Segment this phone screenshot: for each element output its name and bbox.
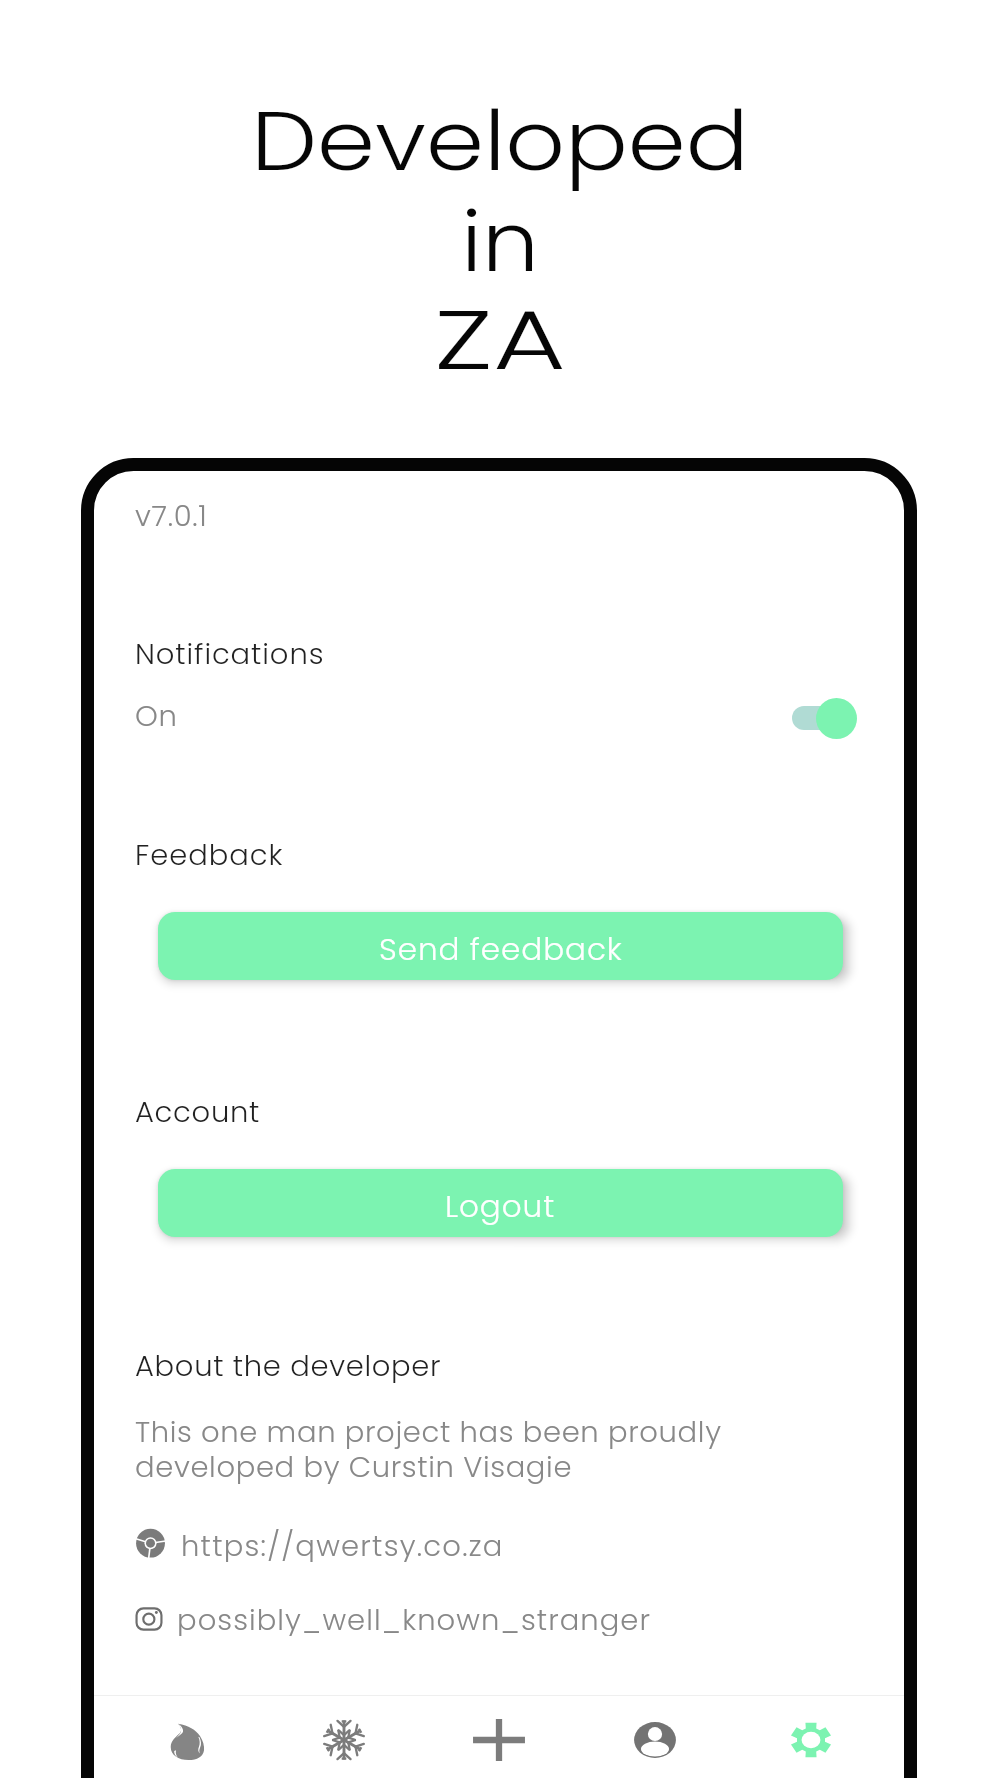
button[interactable]: Snowflake xyxy=(266,1696,421,1778)
staticText: https://qwertsy.co.za xyxy=(181,1526,504,1562)
button[interactable]: Settings xyxy=(733,1696,889,1778)
staticText: This one man project has been proudly de… xyxy=(135,1412,722,1487)
button[interactable]: Logout xyxy=(158,1169,843,1237)
staticText: ZA xyxy=(434,282,566,398)
staticText: possibly_well_known_stranger xyxy=(177,1600,651,1636)
staticText: On xyxy=(135,696,178,737)
button[interactable]: Add xyxy=(421,1696,577,1778)
button[interactable]: https://qwertsy.co.za xyxy=(135,1526,555,1562)
button[interactable]: Flame xyxy=(111,1696,266,1778)
button[interactable]: Account xyxy=(577,1696,733,1778)
staticText: Developed xyxy=(251,83,749,199)
staticText: Notifications xyxy=(135,634,325,675)
staticText: Feedback xyxy=(135,835,284,876)
button[interactable]: Send feedback xyxy=(158,912,843,980)
staticText: in xyxy=(461,184,539,300)
staticText: Logout xyxy=(445,1184,556,1227)
button[interactable]: possibly_well_known_stranger xyxy=(134,1602,704,1638)
staticText: v7.0.1 xyxy=(135,496,208,537)
staticText: Account xyxy=(135,1092,261,1133)
button[interactable]: Notifications toggle xyxy=(792,696,868,742)
staticText: Send feedback xyxy=(379,927,623,970)
staticText: About the developer xyxy=(135,1346,442,1387)
